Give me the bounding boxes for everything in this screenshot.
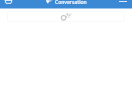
button[interactable] — [7, 11, 125, 22]
staticText: Conversation — [55, 0, 87, 6]
button[interactable]: Inbox — [5, 0, 12, 4]
